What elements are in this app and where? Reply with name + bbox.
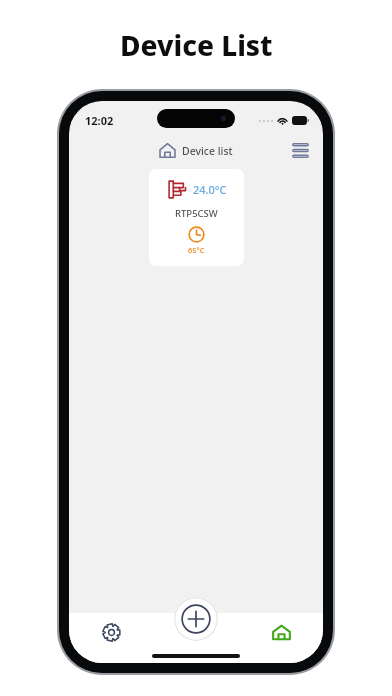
staticText: Device List [120,26,273,64]
button[interactable]: Settings [94,615,128,649]
staticText: RTP5CSW [175,207,218,220]
button[interactable]: 24.0°C [149,169,244,266]
staticText: 12:02 [85,113,114,128]
button[interactable]: Home [264,615,298,649]
staticText: 65°C [188,245,205,255]
staticText: 24.0°C [193,182,227,197]
staticText: Device list [182,144,233,158]
button[interactable]: Add device [174,597,218,641]
button[interactable]: Menu [287,137,313,163]
